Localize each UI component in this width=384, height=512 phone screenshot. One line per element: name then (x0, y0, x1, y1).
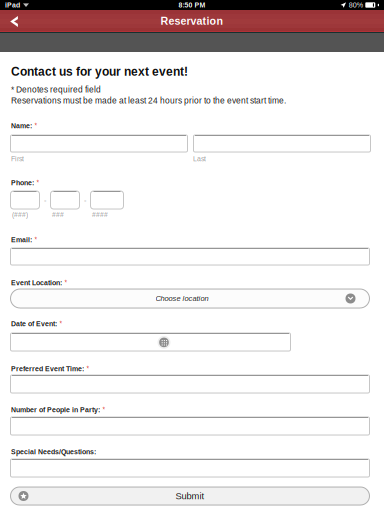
staticText: #### (92, 211, 108, 218)
staticText: 80% (349, 1, 363, 9)
staticText: - (84, 196, 86, 204)
staticText: * (102, 406, 105, 413)
staticText: Reservations must be made at least 24 ho… (11, 96, 286, 105)
staticText: (###) (12, 211, 28, 218)
staticText: * (34, 122, 37, 129)
button[interactable]: Back (0, 10, 36, 32)
staticText: Choose location (155, 294, 208, 303)
staticText: Email: (11, 236, 32, 244)
staticText: ### (52, 211, 64, 218)
staticText: * (59, 320, 62, 327)
staticText: - (44, 196, 46, 204)
staticText: Name: (11, 122, 32, 130)
staticText: iPad (5, 1, 20, 9)
staticText: Number of People in Party: (11, 406, 100, 414)
staticText: 8:50 PM (178, 1, 205, 9)
staticText: Preferred Event Time: (11, 365, 84, 373)
staticText: Contact us for your next event! (11, 65, 188, 78)
staticText: Special Needs/Questions: (11, 448, 96, 456)
staticText: * (86, 365, 89, 372)
staticText: Reservation (160, 15, 223, 27)
staticText: * (36, 179, 39, 186)
button[interactable]: Choose location (10, 289, 369, 308)
staticText: Date of Event: (11, 320, 57, 328)
staticText: * Denotes required field (11, 85, 101, 94)
staticText: Event Location: (11, 279, 62, 287)
staticText: * (64, 279, 67, 286)
button[interactable]: Submit (10, 487, 369, 505)
staticText: Submit (175, 491, 204, 501)
staticText: Last (193, 155, 206, 163)
staticText: * (34, 236, 37, 243)
staticText: First (11, 155, 24, 163)
staticText: Phone: (11, 179, 34, 187)
